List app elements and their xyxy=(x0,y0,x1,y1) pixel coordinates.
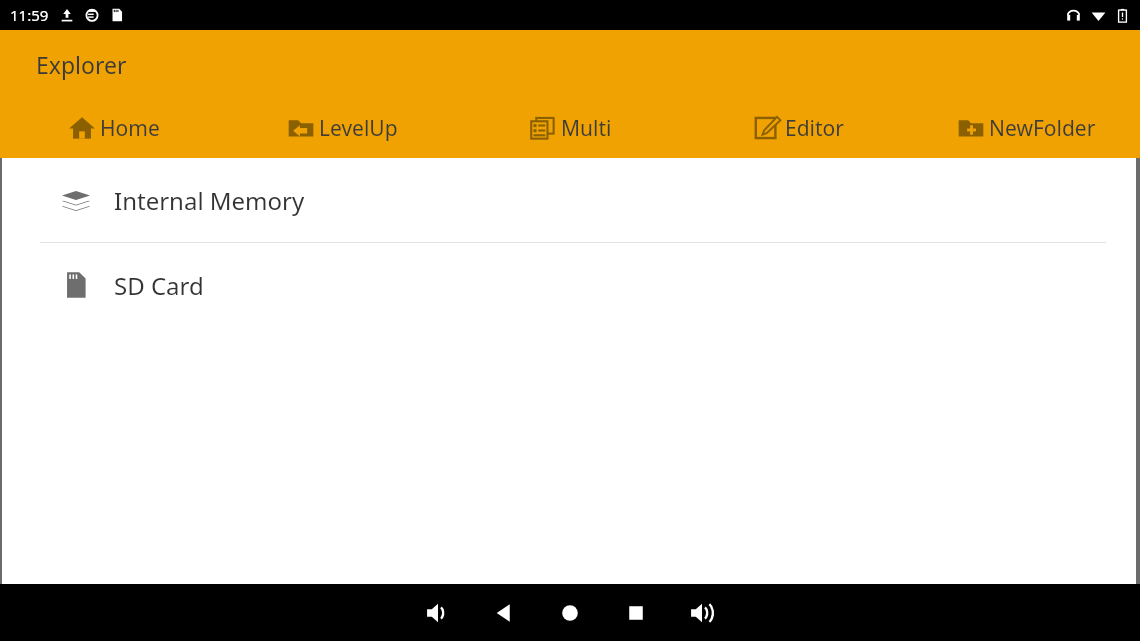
staticText: LevelUp xyxy=(319,114,398,143)
button[interactable]: Recents xyxy=(618,595,654,631)
staticText: Home xyxy=(100,114,160,143)
staticText: Internal Memory xyxy=(114,184,305,217)
button[interactable]: NewFolder xyxy=(912,98,1140,158)
staticText: NewFolder xyxy=(989,114,1096,143)
button[interactable]: Home xyxy=(552,595,588,631)
button[interactable]: SD Card xyxy=(2,243,1136,327)
button[interactable]: Volume down xyxy=(420,595,456,631)
button[interactable]: LevelUp xyxy=(228,98,456,158)
staticText: Editor xyxy=(785,114,844,143)
staticText: 11:59 xyxy=(10,5,49,25)
staticText: Explorer xyxy=(36,49,127,80)
button[interactable]: Home xyxy=(0,98,228,158)
staticText: Multi xyxy=(561,114,612,143)
staticText: SD Card xyxy=(114,269,204,302)
button[interactable]: Multi xyxy=(456,98,684,158)
button[interactable]: Internal Memory xyxy=(2,158,1136,242)
button[interactable]: Back xyxy=(486,595,522,631)
button[interactable]: Editor xyxy=(684,98,912,158)
button[interactable]: Volume up xyxy=(684,595,720,631)
